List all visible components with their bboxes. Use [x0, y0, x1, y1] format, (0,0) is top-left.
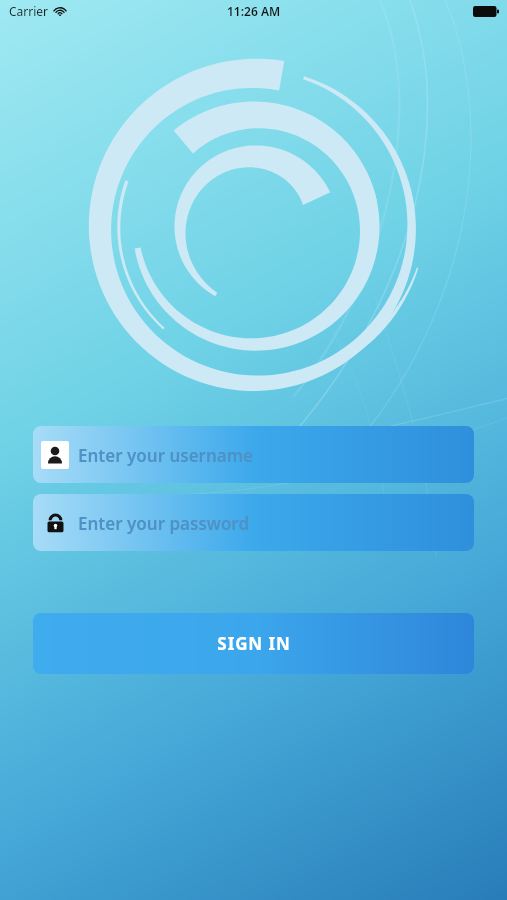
- staticText: Carrier: [9, 3, 49, 19]
- staticText: Enter your username: [78, 444, 254, 467]
- staticText: 11:26 AM: [227, 3, 281, 19]
- button[interactable]: Enter your password: [33, 494, 474, 551]
- button[interactable]: Enter your username: [33, 426, 474, 483]
- staticText: Enter your password: [78, 512, 250, 535]
- staticText: SIGN IN: [217, 632, 291, 655]
- button[interactable]: SIGN IN: [33, 613, 474, 674]
